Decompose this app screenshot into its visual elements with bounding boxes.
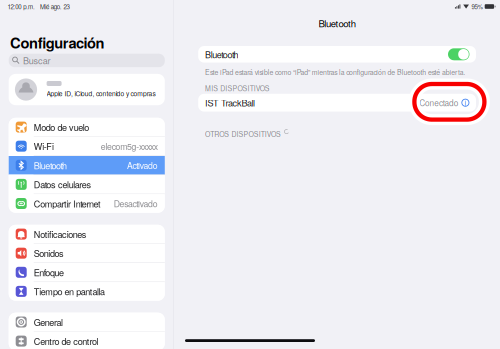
staticText: Enfoque [34,266,64,279]
staticText: Mié ago. 23 [40,2,70,11]
staticText: Apple ID, iCloud, contenido y compras [47,89,155,98]
staticText: 12:00 p.m. [7,2,35,11]
button[interactable]: Compartir Internet [9,194,165,213]
button[interactable]: Apple ID, iCloud, contenido y compras [9,74,165,105]
staticText: Wi-Fi [34,140,54,153]
staticText: MIS DISPOSITIVOS [205,83,270,93]
button[interactable]: Datos celulares [9,175,165,194]
button[interactable]: Enfoque [9,263,165,282]
button[interactable]: Tiempo en pantalla [9,282,165,301]
staticText: Conectado [419,97,459,109]
button[interactable]: Wi-Fi [9,137,165,155]
staticText: IST TrackBall [205,96,255,109]
staticText: OTROS DISPOSITIVOS [205,129,281,139]
staticText: General [34,315,63,328]
staticText: Configuración [10,32,105,53]
staticText: Buscar [23,54,50,67]
staticText: 95% [471,2,482,11]
button[interactable]: Bluetooth [9,156,165,175]
staticText: Datos celulares [34,178,91,191]
staticText: Bluetooth [34,159,67,172]
button[interactable]: IST TrackBall [198,94,476,112]
staticText: Tiempo en pantalla [34,285,105,298]
button[interactable]: Notificaciones [9,225,165,243]
staticText: Desactivado [114,197,158,210]
staticText: Bluetooth [205,48,238,61]
staticText: Centro de control [34,335,98,348]
staticText: Sonidos [34,247,64,260]
staticText: Activado [127,159,158,171]
staticText: Notificaciones [34,228,87,241]
button[interactable]: Sonidos [9,244,165,262]
button[interactable]: Centro de control [9,332,165,349]
staticText: Este iPad estará visible como “iPad” mie… [205,67,465,77]
button[interactable]: Modo de vuelo [9,118,165,136]
staticText: elecom5g-xxxxx [101,140,158,152]
staticText: Compartir Internet [34,197,101,210]
staticText: Bluetooth [318,16,356,30]
staticText: i [464,97,466,108]
staticText: Modo de vuelo [34,121,89,134]
button[interactable]: General [9,313,165,331]
